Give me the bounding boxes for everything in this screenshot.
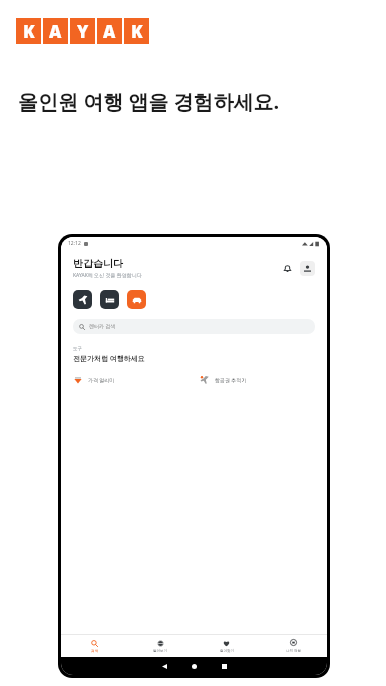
- staticText: 가격 얼리미: [88, 377, 115, 384]
- staticText: 검색: [91, 649, 98, 653]
- staticText: A: [49, 20, 62, 43]
- staticText: 즐겨찾기: [220, 649, 234, 653]
- staticText: 렌터카 검색: [89, 323, 116, 330]
- staticText: 나의 여행: [286, 648, 301, 653]
- button[interactable]: 즐겨찾기: [193, 635, 260, 657]
- button[interactable]: 렌터카 검색: [73, 319, 315, 334]
- staticText: 전문가처럼 여행하세요: [73, 354, 145, 364]
- button[interactable]: Recents: [209, 657, 239, 675]
- staticText: 12:12: [68, 240, 81, 247]
- button[interactable]: Home: [179, 657, 209, 675]
- staticText: K: [23, 20, 35, 43]
- staticText: 올인원 여행 앱을 경험하세요.: [18, 88, 280, 115]
- staticText: KAYAK에 오신 것을 환영합니다: [73, 272, 142, 279]
- button[interactable]: Cars: [127, 290, 146, 309]
- button[interactable]: Flights: [73, 290, 92, 309]
- staticText: 반갑습니다: [73, 257, 123, 270]
- staticText: 둘러보기: [153, 649, 167, 653]
- button[interactable]: 둘러보기: [127, 635, 193, 657]
- button[interactable]: Notifications: [280, 261, 294, 275]
- button[interactable]: Back: [149, 657, 179, 675]
- staticText: A: [103, 20, 116, 43]
- staticText: Y: [77, 20, 89, 43]
- staticText: K: [131, 20, 143, 43]
- button[interactable]: 항공권 추적기: [200, 373, 327, 387]
- button[interactable]: Profile: [300, 261, 315, 276]
- button[interactable]: 검색: [61, 635, 127, 657]
- button[interactable]: 가격 얼리미: [73, 373, 200, 387]
- staticText: 도구: [73, 346, 82, 352]
- button[interactable]: Hotels: [100, 290, 119, 309]
- staticText: 항공권 추적기: [215, 377, 247, 384]
- button[interactable]: 나의 여행: [260, 635, 327, 657]
